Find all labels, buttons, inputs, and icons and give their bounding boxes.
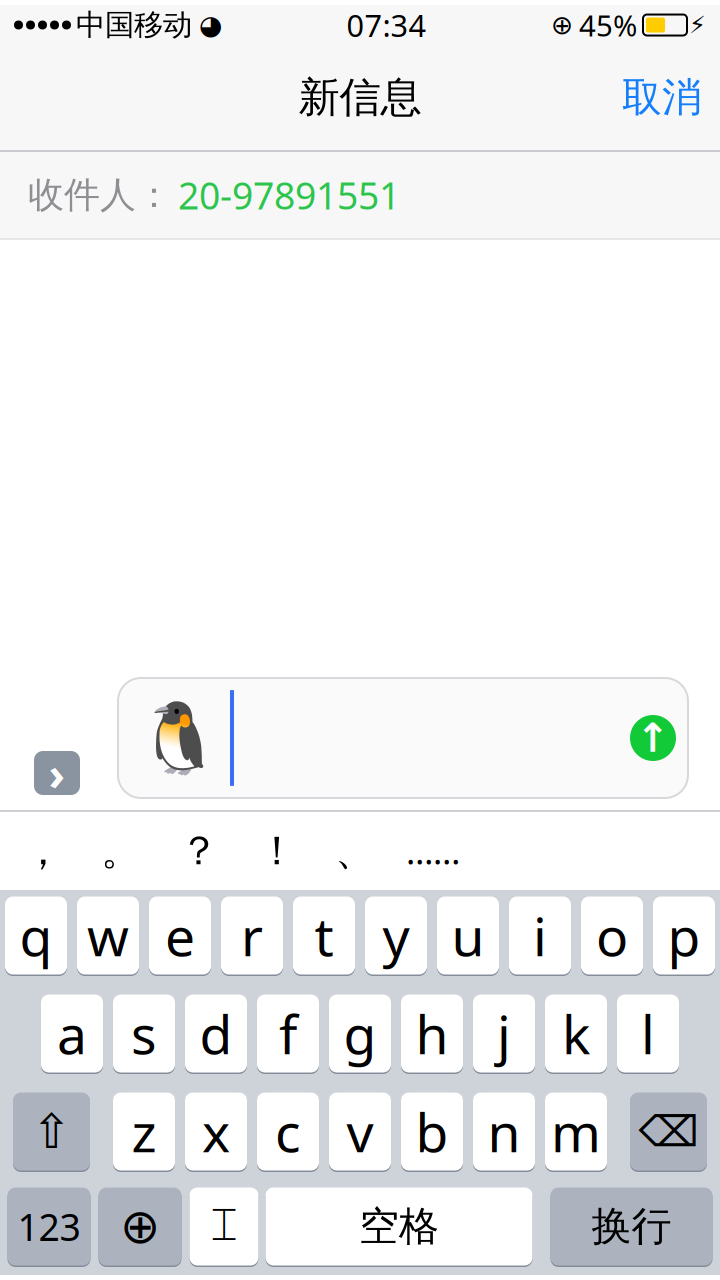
staticText: ◕ [199,10,222,40]
staticText: ⇧ [31,1104,71,1159]
staticText: d [199,998,232,1069]
staticText: ， [23,826,63,875]
button[interactable]: g [329,993,391,1074]
staticText: › [48,743,65,803]
button[interactable]: p [653,895,715,976]
staticText: w [87,900,129,971]
button[interactable]: ？ [160,816,238,886]
staticText: a [57,998,87,1069]
staticText: 换行 [591,1202,671,1251]
button[interactable]: y [365,895,427,976]
staticText: o [596,900,628,971]
staticText: ？ [179,826,219,875]
staticText: 、 [335,826,375,875]
button[interactable]: Show more options [34,751,80,795]
button[interactable]: n [473,1091,535,1172]
staticText: ⚡︎ [689,11,706,39]
staticText: m [551,1096,601,1167]
staticText: p [667,900,700,971]
button[interactable]: z [113,1091,175,1172]
staticText: ↑ [636,715,670,761]
button[interactable]: i [509,895,571,976]
button[interactable]: x [185,1091,247,1172]
button[interactable]: h [401,993,463,1074]
button[interactable]: Shift [13,1091,90,1172]
button[interactable]: Dictate [189,1186,258,1267]
staticText: r [241,900,263,971]
button[interactable]: b [401,1091,463,1172]
button[interactable]: c [257,1091,319,1172]
staticText: e [165,900,195,971]
button[interactable]: k [545,993,607,1074]
button[interactable]: 、 [316,816,394,886]
button[interactable]: 。 [82,816,160,886]
button[interactable]: q [5,895,67,976]
staticText: j [497,998,511,1069]
staticText: ⌶ [210,1204,237,1249]
staticText: 收件人： [28,173,172,217]
button[interactable]: 换行 [550,1186,712,1267]
staticText: n [487,1096,520,1167]
button[interactable]: r [221,895,283,976]
button[interactable]: o [581,895,643,976]
staticText: b [415,1096,448,1167]
button[interactable]: a [41,993,103,1074]
button[interactable]: u [437,895,499,976]
button[interactable]: l [617,993,679,1074]
button[interactable]: Send [630,715,676,761]
button[interactable]: 取消 [604,63,720,132]
staticText: u [451,900,484,971]
staticText: z [131,1096,156,1167]
staticText: 新信息 [298,72,421,123]
staticText: 。 [101,826,141,875]
staticText: x [202,1096,230,1167]
staticText: 07:34 [346,5,426,45]
button[interactable]: s [113,993,175,1074]
staticText: 取消 [622,73,702,122]
staticText: 空格 [359,1202,439,1251]
button[interactable]: t [293,895,355,976]
button[interactable]: j [473,993,535,1074]
button[interactable]: v [329,1091,391,1172]
staticText: ⌫ [638,1107,698,1156]
staticText: t [314,900,333,971]
staticText: 中国移动 [76,7,192,43]
button[interactable]: f [257,993,319,1074]
button[interactable]: ！ [238,816,316,886]
staticText: g [343,998,376,1069]
staticText: ⊕ [120,1199,160,1254]
staticText: k [562,998,590,1069]
staticText: y [382,900,409,971]
staticText: f [279,998,297,1069]
button[interactable]: 收件人： [0,152,720,238]
staticText: v [346,1096,373,1167]
button[interactable]: …… [394,816,472,886]
button[interactable]: 123 [7,1186,90,1267]
staticText: s [131,998,157,1069]
staticText: ⊕ [551,10,573,40]
button[interactable]: ， [4,816,82,886]
button[interactable]: e [149,895,211,976]
staticText: 45% [579,5,637,44]
button[interactable]: 空格 [265,1186,532,1267]
staticText: 🐧 [136,698,222,778]
button[interactable]: w [77,895,139,976]
staticText: ！ [257,826,297,875]
staticText: 20-97891551 [178,170,400,220]
staticText: l [641,998,655,1069]
button[interactable]: Delete [630,1091,707,1172]
staticText: h [415,998,448,1069]
staticText: i [533,900,547,971]
staticText: c [275,1096,301,1167]
button[interactable]: d [185,993,247,1074]
staticText: 123 [17,1202,80,1251]
button[interactable]: m [545,1091,607,1172]
button[interactable]: Next keyboard [98,1186,181,1267]
staticText: …… [406,828,460,874]
staticText: q [19,900,52,971]
